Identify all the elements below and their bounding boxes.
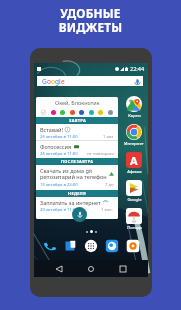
button[interactable]: Карты — [126, 96, 142, 124]
button[interactable]: Скачать из дома git репозитарий на телеф… — [36, 165, 118, 190]
staticText: ЗАВТРА — [69, 118, 86, 123]
button[interactable] — [98, 110, 103, 115]
button[interactable]: Заплатить за интернет — [36, 197, 118, 219]
button[interactable]: Интернет — [124, 124, 144, 152]
staticText: 26 октября в 11:00 — [40, 134, 78, 138]
staticText: не повторять — [87, 151, 114, 156]
button[interactable]: Phone — [42, 239, 56, 253]
other: Voice search — [134, 78, 141, 85]
staticText: 20 октября в 11:00 — [40, 207, 78, 213]
button[interactable]: Notes — [63, 239, 77, 253]
button[interactable]: G — [37, 76, 143, 86]
button[interactable] — [89, 110, 94, 115]
button[interactable]: A — [126, 152, 142, 180]
staticText: Афиша — [127, 169, 142, 175]
staticText: 1 мес. — [101, 207, 114, 213]
staticText: УДОБНЫЕ ВИДЖЕТЫ — [0, 5, 181, 36]
staticText: Погода — [127, 225, 142, 231]
button[interactable] — [79, 110, 84, 115]
button[interactable]: Camera — [126, 239, 140, 253]
button[interactable]: Voice input — [72, 207, 87, 222]
button[interactable] — [70, 110, 75, 115]
staticText: 1 раз — [103, 134, 114, 138]
staticText: o — [47, 77, 51, 86]
staticText: e — [61, 77, 65, 86]
staticText: Вставай! — [40, 126, 63, 133]
button[interactable] — [41, 110, 46, 115]
staticText: Фотосессия — [40, 143, 72, 150]
staticText: 26 октября в 11:00 — [40, 151, 78, 156]
staticText: Интернет — [124, 141, 144, 147]
staticText: Скачать из дома git репозитарий на телеф… — [40, 167, 107, 181]
staticText: Заплатить за интернет — [40, 199, 101, 206]
button[interactable]: Погода — [126, 208, 142, 236]
staticText: 15 октября в 23:00 — [40, 182, 78, 188]
button[interactable]: Back — [52, 262, 66, 276]
staticText: Карты — [128, 113, 141, 119]
button[interactable]: Recents — [116, 262, 130, 276]
staticText: A — [130, 153, 138, 168]
staticText: g — [55, 77, 59, 86]
staticText: o — [51, 77, 55, 86]
staticText: Окей, Блокнотик — [55, 99, 100, 106]
staticText: l — [59, 77, 61, 86]
button[interactable]: Home — [84, 262, 98, 276]
staticText: Google — [127, 197, 142, 203]
button[interactable]: All apps — [84, 239, 98, 253]
staticText: G — [42, 77, 47, 86]
button[interactable]: Photos — [105, 239, 119, 253]
button[interactable] — [51, 110, 56, 115]
button[interactable] — [60, 110, 65, 115]
button[interactable] — [108, 110, 113, 115]
staticText: 7 дн — [105, 182, 114, 188]
staticText: ПОСЛЕЗАВТРА — [61, 159, 94, 164]
staticText: 22:44 — [130, 65, 145, 72]
button[interactable]: Вставай! — [36, 124, 118, 140]
button[interactable]: Фотосессия — [36, 141, 118, 158]
staticText: НЕДЕЛЯ — [68, 191, 87, 196]
button[interactable]: Google — [126, 180, 142, 208]
